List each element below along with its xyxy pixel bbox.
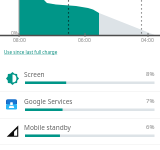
- staticText: Use since last full charge: [4, 49, 58, 55]
- staticText: Screen: [24, 70, 45, 79]
- staticText: 6%: [146, 123, 155, 131]
- staticText: 04:00: [141, 37, 154, 44]
- other: Google Services: [6, 99, 17, 110]
- other: Mobile standby: [6, 125, 19, 138]
- staticText: Mobile standby: [24, 123, 71, 132]
- button[interactable]: Google Services: [0, 93, 160, 119]
- staticText: 8%: [146, 70, 155, 78]
- staticText: 08:00: [13, 37, 26, 44]
- button[interactable]: Use since last full charge: [2, 45, 64, 57]
- staticText: 7%: [146, 97, 155, 105]
- staticText: 06:00: [78, 37, 91, 44]
- staticText: Google Services: [24, 97, 73, 106]
- button[interactable]: Screen: [0, 66, 160, 92]
- button[interactable]: Mobile standby: [0, 119, 160, 145]
- other: Screen: [6, 72, 19, 85]
- staticText: 0%: [11, 30, 19, 37]
